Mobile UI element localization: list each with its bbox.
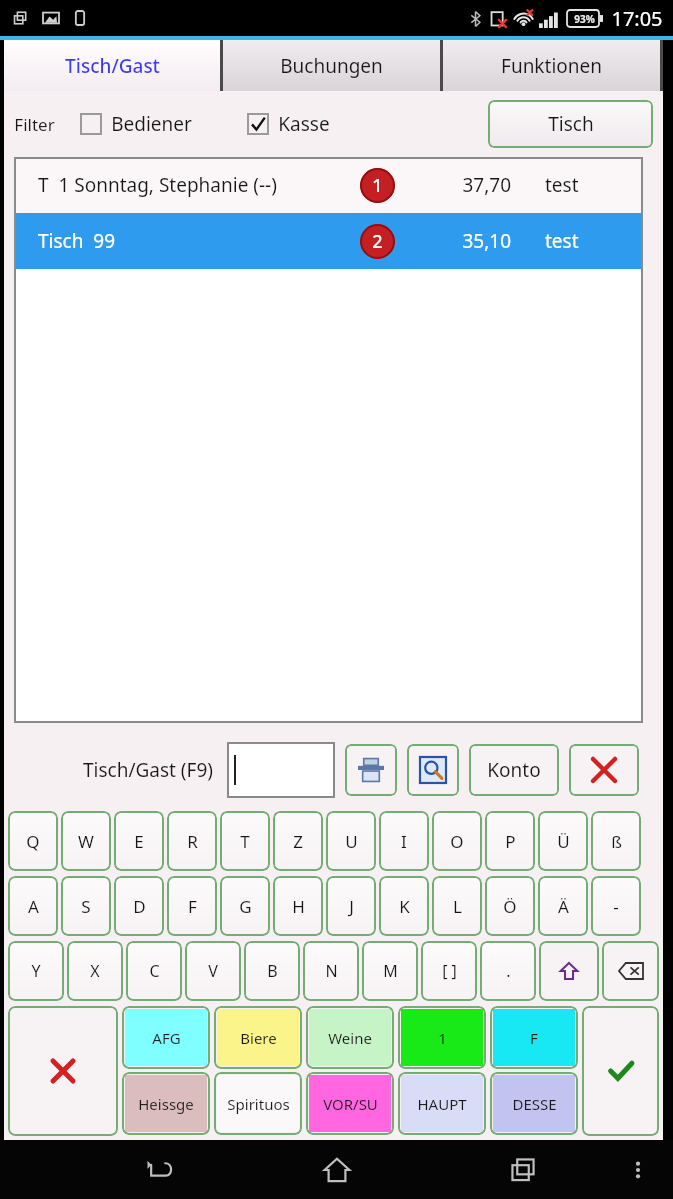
- button[interactable]: D: [114, 876, 164, 936]
- button[interactable]: Biere: [217, 1009, 299, 1066]
- button[interactable]: Mehr Optionen: [621, 1153, 655, 1187]
- button[interactable]: Bediener: [77, 107, 196, 141]
- button[interactable]: T 1 Sonntag, Stephanie (--): [14, 157, 643, 213]
- button[interactable]: G: [220, 876, 270, 936]
- button[interactable]: Tisch 99: [14, 213, 643, 269]
- staticText: Ü: [557, 830, 570, 853]
- button[interactable]: T: [220, 811, 270, 871]
- button[interactable]: Y: [8, 941, 64, 1001]
- button[interactable]: Weine: [309, 1009, 391, 1066]
- staticText: Ö: [503, 895, 517, 918]
- staticText: Heissge: [138, 1094, 194, 1114]
- staticText: R: [187, 830, 198, 853]
- staticText: G: [239, 895, 252, 918]
- staticText: Biere: [240, 1028, 277, 1048]
- staticText: Filter: [14, 113, 55, 136]
- staticText: T: [240, 830, 250, 853]
- staticText: F: [188, 895, 197, 918]
- button[interactable]: X: [67, 941, 123, 1001]
- button[interactable]: VOR/SU: [309, 1075, 391, 1132]
- staticText: N: [325, 960, 338, 982]
- button[interactable]: M: [362, 941, 418, 1001]
- button[interactable]: Suchen: [407, 744, 459, 796]
- button[interactable]: ß: [591, 811, 641, 871]
- button[interactable]: Z: [273, 811, 323, 871]
- button[interactable]: -: [591, 876, 641, 936]
- button[interactable]: C: [126, 941, 182, 1001]
- button[interactable]: DESSE: [493, 1075, 575, 1132]
- button[interactable]: E: [114, 811, 164, 871]
- button[interactable]: Drucken: [345, 744, 397, 796]
- button[interactable]: .: [480, 941, 536, 1001]
- button[interactable]: Konto: [469, 744, 559, 796]
- button[interactable]: Heissge: [125, 1075, 207, 1132]
- button[interactable]: Kasse: [244, 107, 334, 141]
- button[interactable]: Löschen: [602, 941, 659, 1001]
- staticText: L: [453, 895, 462, 918]
- button[interactable]: Umschalt: [539, 941, 599, 1001]
- staticText: 93%: [574, 12, 595, 26]
- button[interactable]: AFG: [125, 1009, 207, 1066]
- button[interactable]: Abbrechen: [8, 1006, 118, 1136]
- button[interactable]: Ä: [538, 876, 588, 936]
- staticText: O: [450, 830, 464, 853]
- button[interactable]: Buchungen: [223, 40, 440, 91]
- button[interactable]: I: [379, 811, 429, 871]
- button[interactable]: B: [244, 941, 300, 1001]
- staticText: Q: [26, 830, 40, 853]
- button[interactable]: Abbrechen: [569, 744, 639, 796]
- button[interactable]: L: [432, 876, 482, 936]
- button[interactable]: Ü: [538, 811, 588, 871]
- button[interactable]: Tisch/Gast: [4, 40, 220, 91]
- button[interactable]: P: [485, 811, 535, 871]
- staticText: 2: [372, 229, 383, 254]
- staticText: Y: [31, 960, 41, 982]
- button[interactable]: A: [8, 876, 58, 936]
- staticText: H: [292, 895, 305, 918]
- button[interactable]: W: [61, 811, 111, 871]
- button[interactable]: R: [167, 811, 217, 871]
- button[interactable]: V: [185, 941, 241, 1001]
- button[interactable]: 1: [401, 1009, 483, 1066]
- button[interactable]: Zurück: [140, 1150, 180, 1190]
- staticText: M: [383, 960, 398, 982]
- button[interactable]: H: [273, 876, 323, 936]
- staticText: AFG: [152, 1028, 181, 1048]
- button[interactable]: K: [379, 876, 429, 936]
- staticText: S: [81, 895, 91, 918]
- staticText: Ä: [558, 895, 569, 918]
- staticText: Spirituos: [227, 1094, 290, 1114]
- button[interactable]: [ ]: [421, 941, 477, 1001]
- button[interactable]: Tisch: [488, 100, 653, 148]
- button[interactable]: [227, 742, 335, 798]
- staticText: 37,70: [462, 172, 511, 198]
- button[interactable]: J: [326, 876, 376, 936]
- button[interactable]: HAUPT: [401, 1075, 483, 1132]
- button[interactable]: S: [61, 876, 111, 936]
- button[interactable]: Funktionen: [443, 40, 660, 91]
- staticText: Funktionen: [501, 53, 602, 79]
- button[interactable]: U: [326, 811, 376, 871]
- button[interactable]: Startbildschirm: [317, 1150, 357, 1190]
- button[interactable]: O: [432, 811, 482, 871]
- staticText: Konto: [487, 757, 541, 783]
- button[interactable]: Ö: [485, 876, 535, 936]
- staticText: A: [28, 895, 39, 918]
- button[interactable]: Q: [8, 811, 58, 871]
- staticText: W: [78, 830, 94, 853]
- button[interactable]: Spirituos: [217, 1075, 299, 1132]
- button[interactable]: N: [303, 941, 359, 1001]
- staticText: B: [267, 960, 278, 982]
- staticText: F: [530, 1028, 538, 1048]
- staticText: HAUPT: [417, 1094, 467, 1114]
- button[interactable]: Bestätigen: [582, 1006, 659, 1136]
- staticText: T 1 Sonntag, Stephanie (--): [38, 172, 277, 198]
- button[interactable]: F: [167, 876, 217, 936]
- staticText: U: [345, 830, 358, 853]
- staticText: P: [505, 830, 516, 853]
- button[interactable]: F: [493, 1009, 575, 1066]
- staticText: K: [399, 895, 410, 918]
- staticText: 1: [372, 173, 383, 198]
- button[interactable]: Übersicht: [503, 1150, 543, 1190]
- staticText: -: [613, 895, 619, 918]
